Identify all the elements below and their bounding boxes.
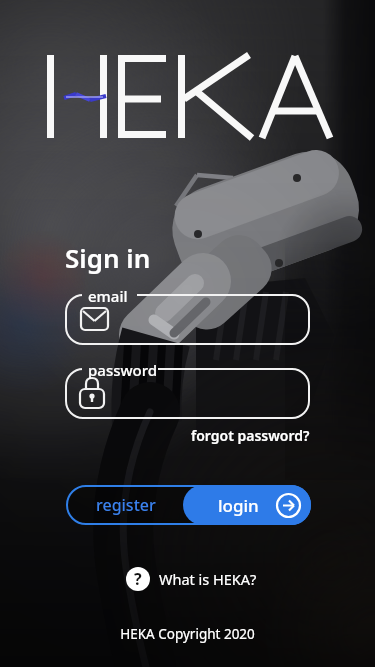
- staticText: password: [88, 360, 158, 380]
- button[interactable]: forgot password?: [180, 425, 310, 445]
- button[interactable]: [66, 295, 309, 344]
- staticText: login: [218, 494, 259, 517]
- staticText: forgot password?: [191, 426, 310, 445]
- staticText: ?: [134, 568, 142, 590]
- staticText: register: [96, 494, 156, 516]
- button[interactable]: [66, 369, 309, 418]
- staticText: email: [88, 286, 128, 306]
- staticText: What is HEKA?: [159, 569, 257, 589]
- button[interactable]: login: [183, 485, 311, 525]
- button[interactable]: ?: [126, 567, 257, 591]
- staticText: Sign in: [65, 240, 151, 275]
- button[interactable]: register: [66, 485, 186, 525]
- staticText: HEKA Copyright 2020: [0, 625, 375, 643]
